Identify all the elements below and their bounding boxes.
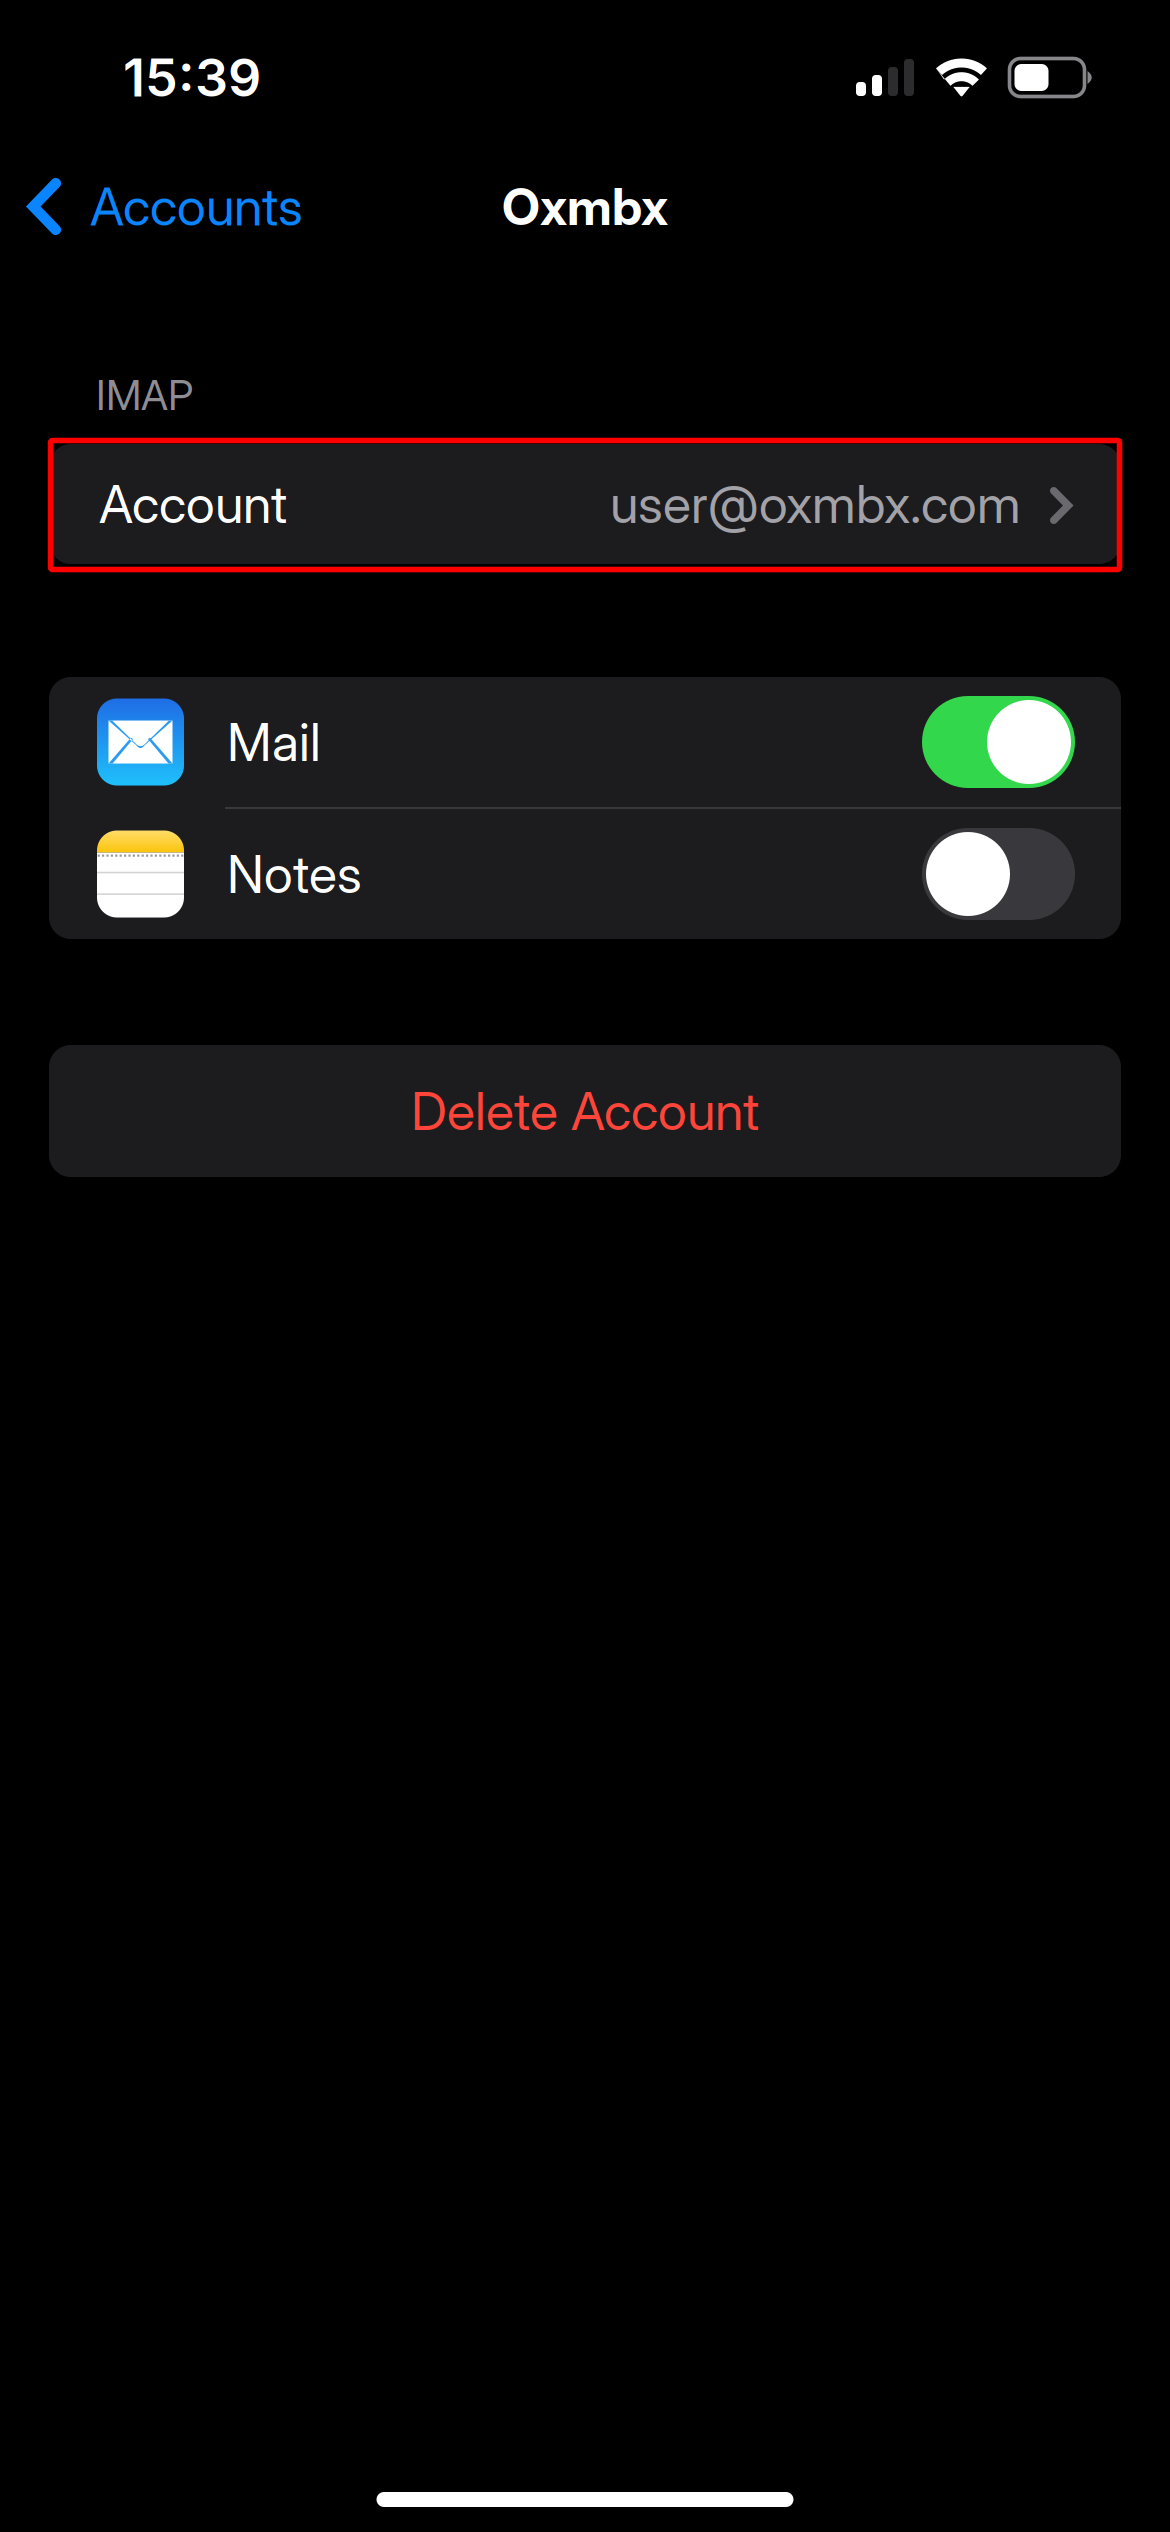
button[interactable]: Delete Account [49,1045,1121,1177]
button[interactable]: Accounts [0,165,303,248]
button[interactable]: Mail [922,696,1075,788]
staticText: 15:39 [123,46,261,109]
button[interactable]: Notes [922,828,1075,920]
staticText: Delete Account [411,1080,759,1142]
staticText: IMAP [96,370,193,420]
staticText: user@oxmbx.com [610,473,1021,535]
staticText: Mail [227,711,321,773]
staticText: Account [99,473,287,535]
staticText: Notes [227,843,362,905]
button[interactable]: Account [49,444,1121,564]
staticText: Accounts [90,175,303,238]
staticText: Oxmbx [502,176,668,237]
